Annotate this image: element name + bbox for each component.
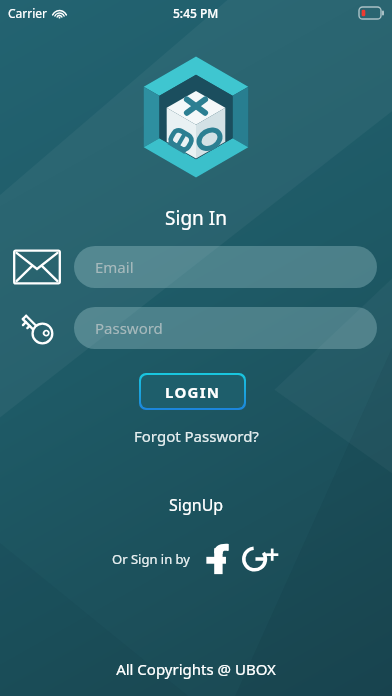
button[interactable]: Email: [13, 246, 61, 288]
button[interactable]: Sign in with Google: [241, 541, 281, 577]
staticText: Carrier: [8, 5, 48, 21]
staticText: LOGIN: [165, 382, 221, 402]
staticText: Or Sign in by: [112, 550, 190, 568]
staticText: 5:45 PM: [173, 5, 219, 21]
button[interactable]: Sign in with Facebook: [203, 541, 231, 577]
staticText: Email: [95, 257, 134, 277]
button[interactable]: Forgot Password?: [128, 424, 265, 448]
staticText: Forgot Password?: [134, 426, 259, 446]
button[interactable]: Password: [74, 307, 377, 349]
staticText: All Copyrights @ UBOX: [0, 659, 392, 679]
button[interactable]: LOGIN: [141, 375, 244, 408]
button[interactable]: Password: [13, 307, 61, 349]
button[interactable]: Email: [74, 246, 377, 288]
staticText: Password: [95, 318, 163, 338]
button[interactable]: SignUp: [163, 492, 230, 518]
staticText: Sign In: [0, 205, 392, 231]
staticText: SignUp: [169, 494, 224, 516]
